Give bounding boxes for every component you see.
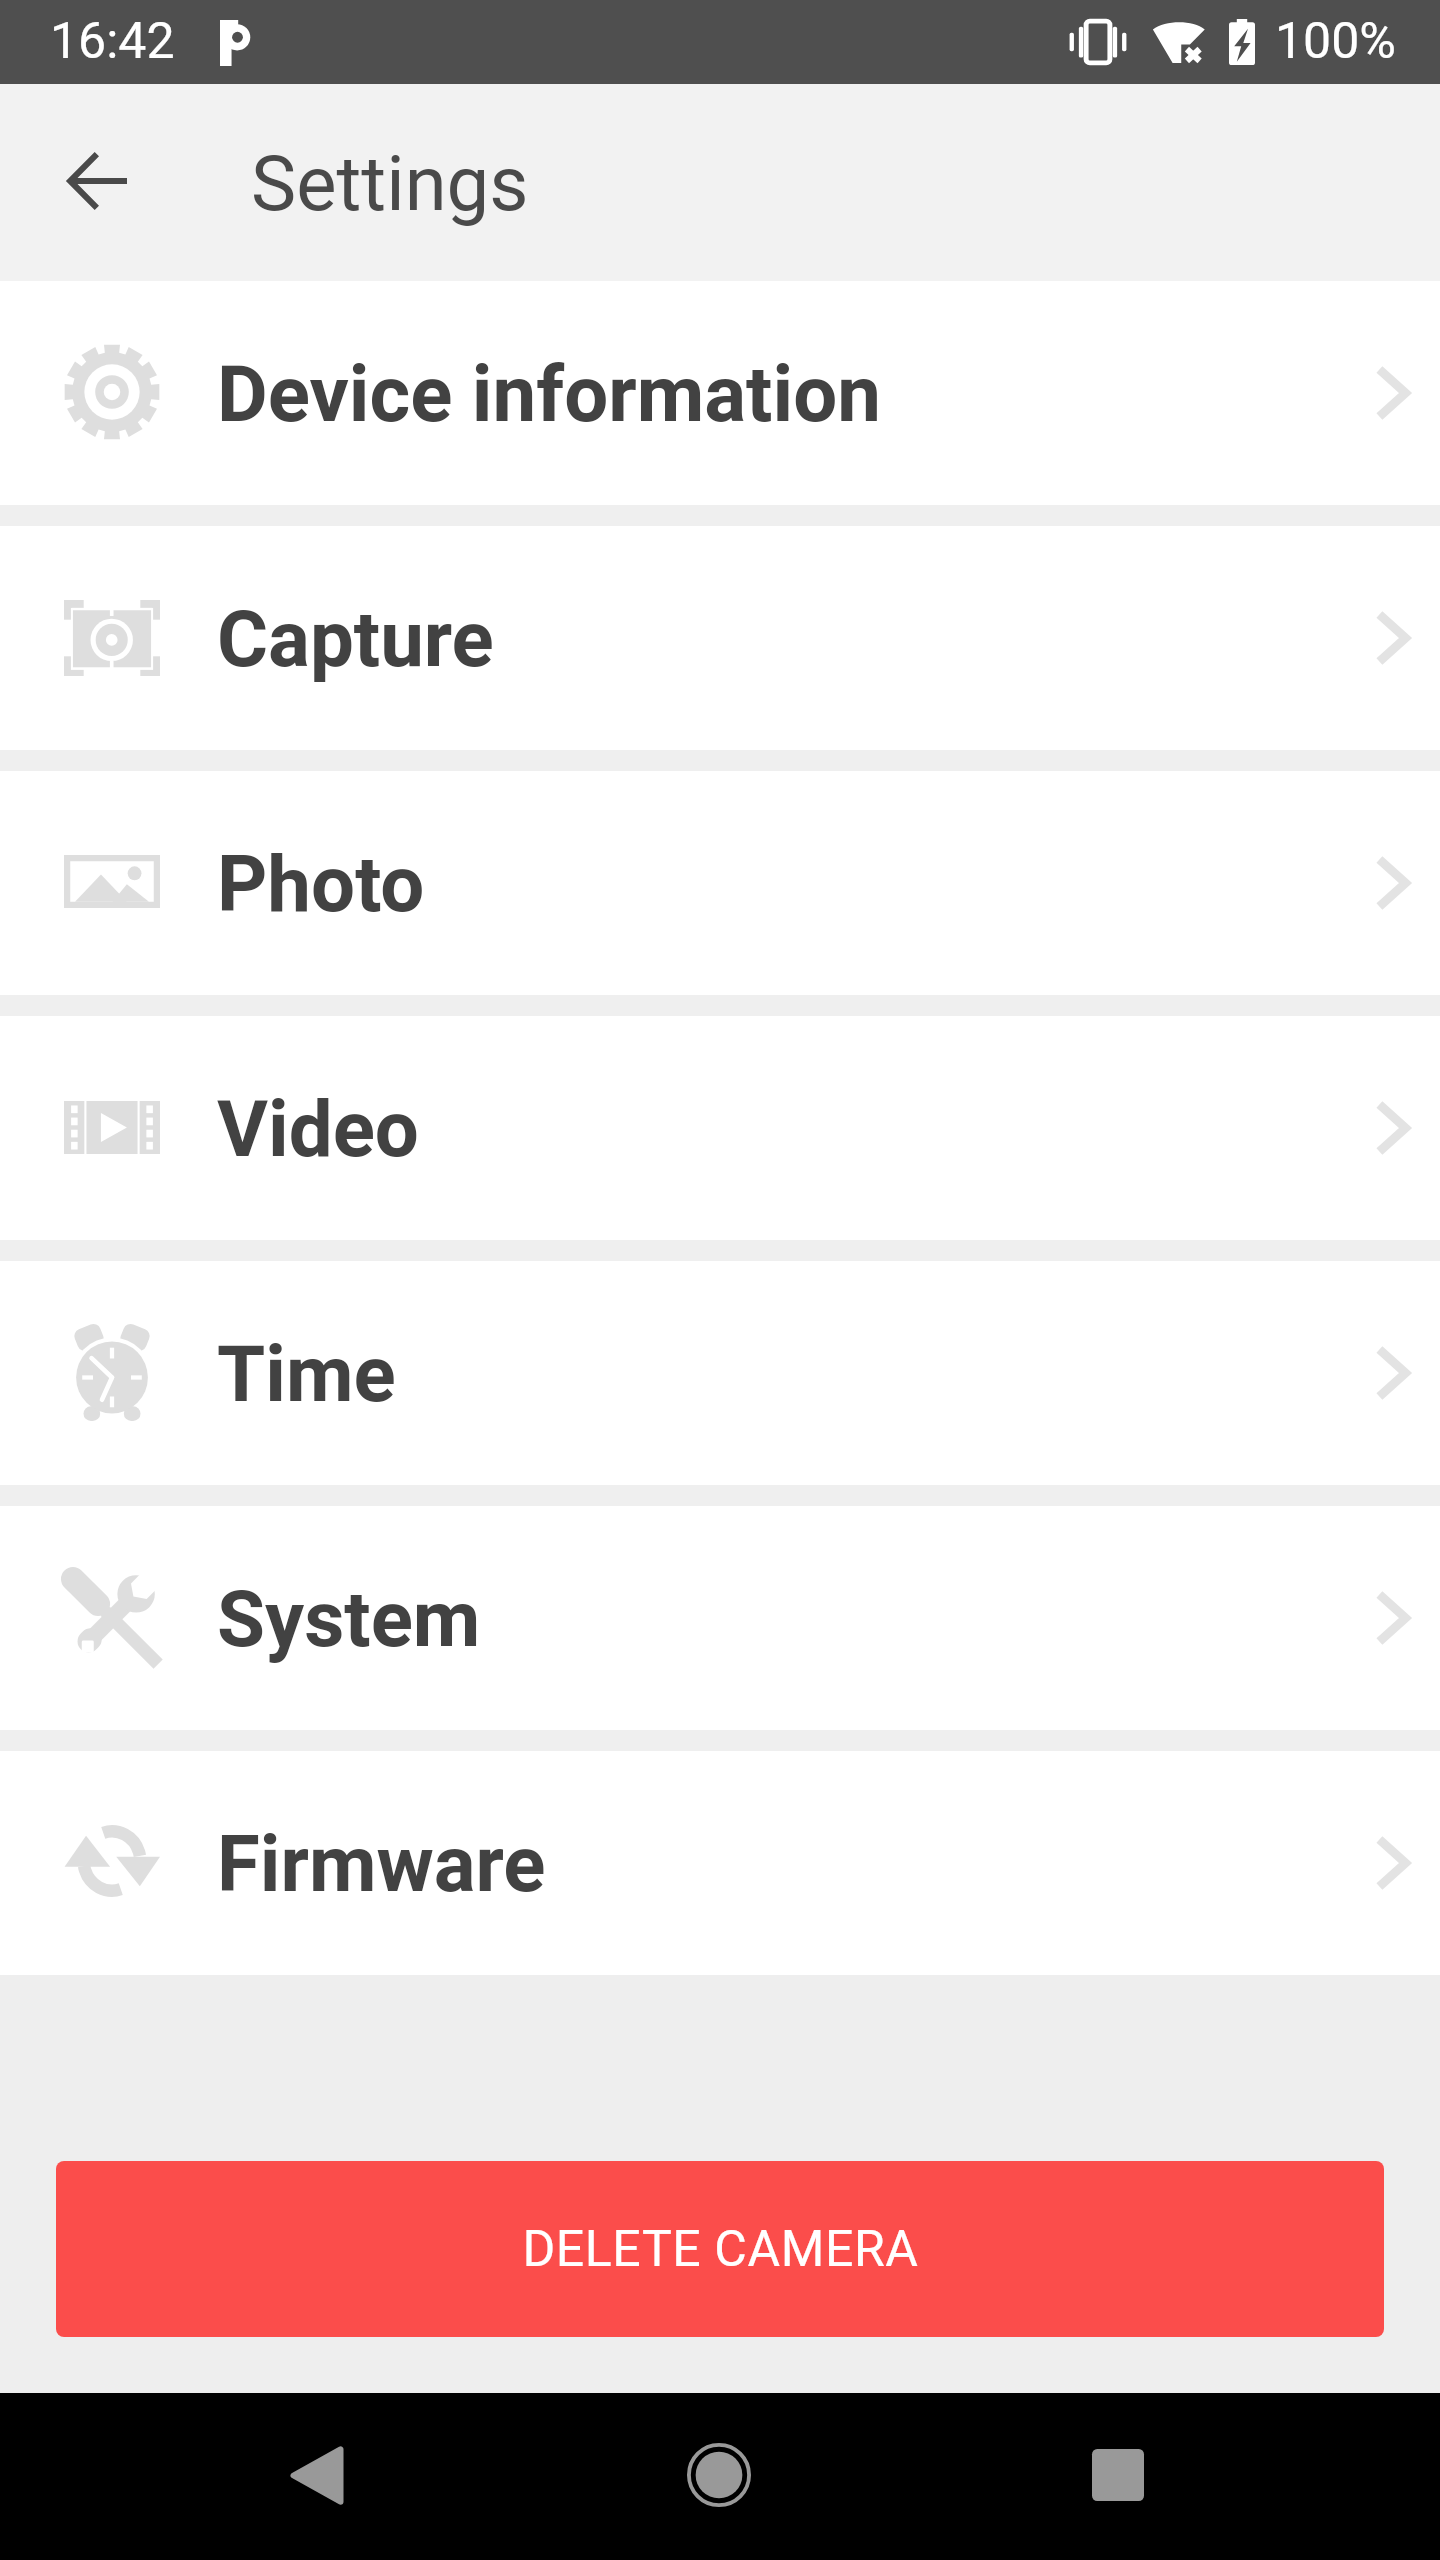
staticText: Device information bbox=[217, 349, 881, 440]
staticText: 16:42 bbox=[50, 12, 175, 71]
button[interactable]: Video bbox=[0, 1016, 1440, 1240]
button[interactable]: Back bbox=[39, 127, 151, 239]
staticText: Settings bbox=[251, 139, 529, 228]
staticText: 100% bbox=[1275, 12, 1396, 71]
staticText: Video bbox=[217, 1084, 419, 1175]
staticText: Time bbox=[217, 1329, 396, 1420]
button[interactable]: DELETE CAMERA bbox=[56, 2161, 1384, 2337]
staticText: System bbox=[217, 1574, 481, 1665]
button[interactable]: Capture bbox=[0, 526, 1440, 750]
staticText: DELETE CAMERA bbox=[522, 2220, 919, 2279]
button[interactable]: Firmware bbox=[0, 1751, 1440, 1975]
button[interactable]: Time bbox=[0, 1261, 1440, 1485]
button[interactable]: Photo bbox=[0, 771, 1440, 995]
staticText: Photo bbox=[217, 839, 425, 930]
button[interactable]: System bbox=[0, 1506, 1440, 1730]
button[interactable]: Home bbox=[649, 2405, 789, 2545]
button[interactable]: Back bbox=[247, 2405, 387, 2545]
staticText: Firmware bbox=[217, 1819, 546, 1910]
button[interactable]: Recents bbox=[1048, 2405, 1188, 2545]
button[interactable]: Device information bbox=[0, 281, 1440, 505]
staticText: Capture bbox=[217, 594, 494, 685]
